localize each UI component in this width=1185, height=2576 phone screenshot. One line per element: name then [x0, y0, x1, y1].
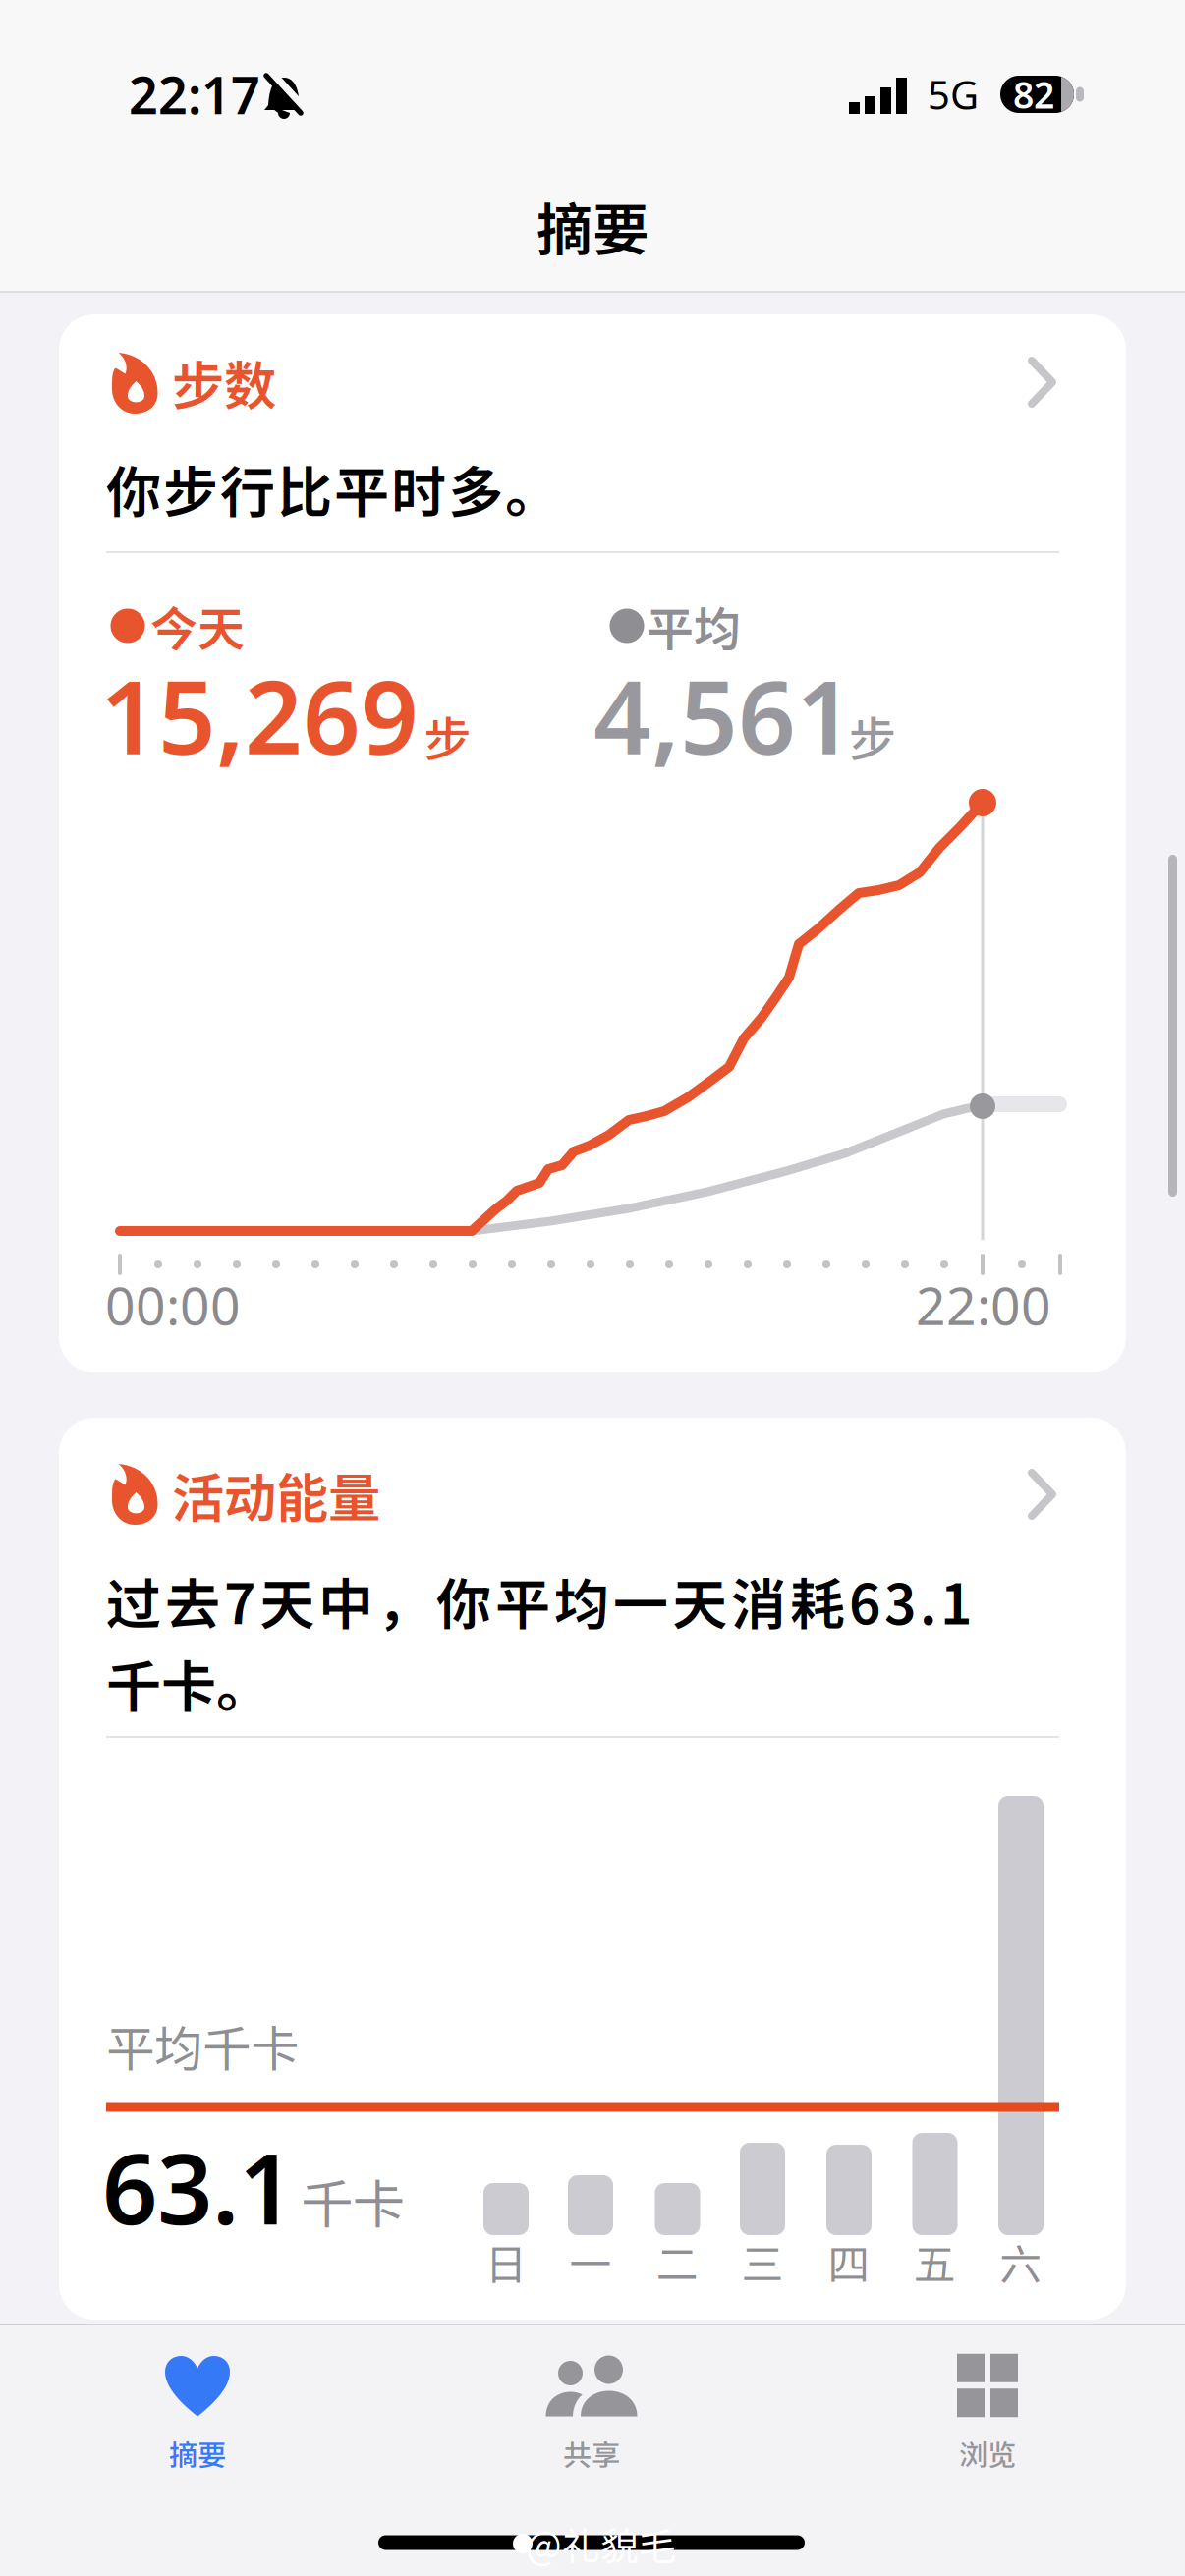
button[interactable]: 摘要: [0, 2328, 395, 2515]
button[interactable]: 步数: [59, 314, 1126, 1372]
staticText: 摘要: [169, 2432, 226, 2474]
staticText: 今天: [150, 592, 245, 660]
staticText: 摘要: [536, 185, 649, 267]
staticText: 步数: [172, 344, 276, 420]
staticText: 00:00: [105, 1270, 241, 1339]
staticText: 千卡: [301, 2163, 405, 2239]
staticText: 过去7天中，你平均一天消耗63.1: [106, 1561, 972, 1640]
staticText: 一: [569, 2231, 612, 2292]
staticText: 四: [828, 2231, 870, 2292]
staticText: 4,561: [593, 648, 854, 782]
staticText: 15,269: [100, 648, 419, 782]
staticText: 22:00: [916, 1270, 1051, 1339]
staticText: 日: [485, 2231, 527, 2292]
staticText: 共享: [563, 2432, 620, 2474]
staticText: 千卡。: [106, 1643, 271, 1723]
staticText: 五: [914, 2231, 956, 2292]
button[interactable]: 活动能量: [59, 1418, 1126, 2320]
button[interactable]: 共享: [395, 2328, 790, 2515]
button[interactable]: 浏览: [790, 2328, 1185, 2515]
staticText: 你步行比平时多。: [106, 448, 560, 528]
staticText: 平均千卡: [106, 2010, 299, 2081]
staticText: 浏览: [959, 2432, 1016, 2474]
staticText: 步: [849, 702, 896, 770]
staticText: 63.1: [102, 2123, 294, 2251]
staticText: 22:17: [129, 60, 260, 128]
staticText: 平均: [647, 592, 741, 660]
staticText: @礼貌毛: [526, 2516, 677, 2571]
staticText: 82: [1013, 70, 1054, 119]
staticText: 5G: [928, 68, 979, 120]
staticText: 三: [741, 2231, 784, 2292]
staticText: 二: [656, 2231, 699, 2292]
staticText: 步: [424, 702, 471, 770]
staticText: 活动能量: [172, 1456, 380, 1532]
staticText: 六: [1000, 2231, 1042, 2292]
